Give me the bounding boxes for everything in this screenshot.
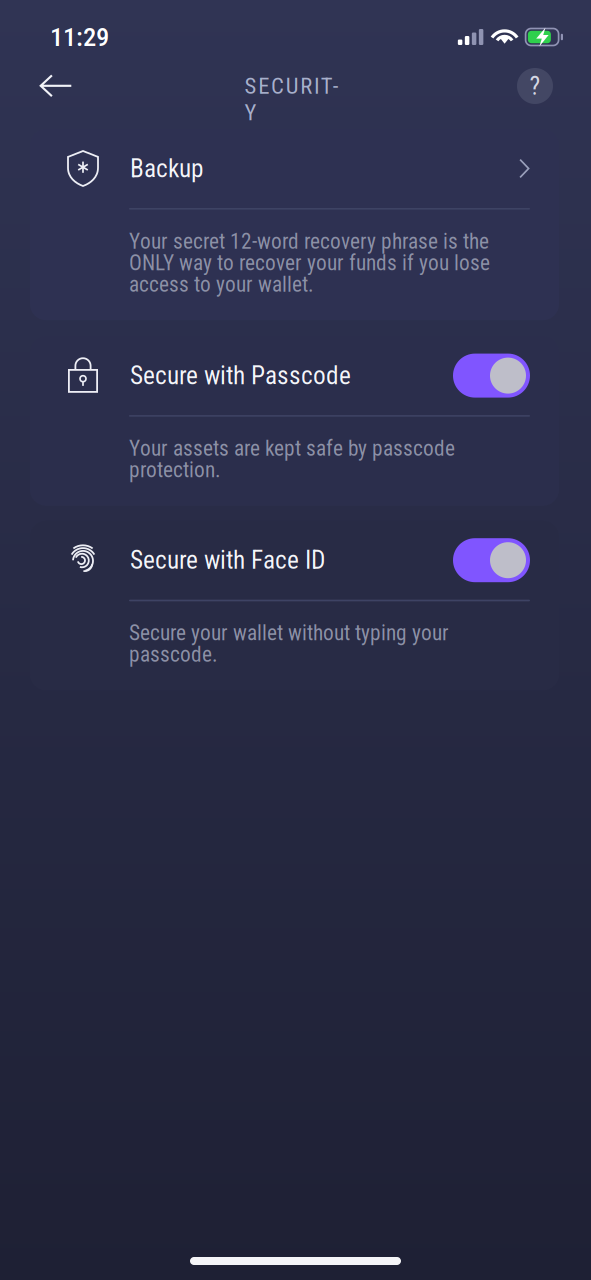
staticText: ? bbox=[529, 71, 540, 101]
staticText: 11:29 bbox=[50, 21, 109, 53]
button[interactable]: Secure with Face ID bbox=[30, 521, 559, 690]
button[interactable]: Secure with Passcode bbox=[30, 336, 559, 506]
staticText: Backup bbox=[130, 154, 203, 183]
staticText: Secure with Face ID bbox=[130, 545, 325, 575]
staticText: ONLY way to recover your funds if you lo… bbox=[129, 250, 490, 275]
staticText: SECURITY bbox=[244, 73, 346, 99]
staticText: Your secret 12-word recovery phrase is t… bbox=[129, 229, 489, 254]
staticText: Secure your wallet without typing your bbox=[129, 621, 449, 646]
staticText: Secure with Passcode bbox=[130, 361, 351, 390]
staticText: passcode. bbox=[129, 642, 218, 667]
staticText: access to your wallet. bbox=[129, 272, 314, 297]
staticText: Your assets are kept safe by passcode bbox=[129, 436, 455, 461]
button[interactable]: Help bbox=[507, 59, 563, 113]
button[interactable]: Backup bbox=[30, 129, 559, 320]
staticText: protection. bbox=[129, 457, 221, 482]
button[interactable]: Back bbox=[20, 59, 92, 113]
